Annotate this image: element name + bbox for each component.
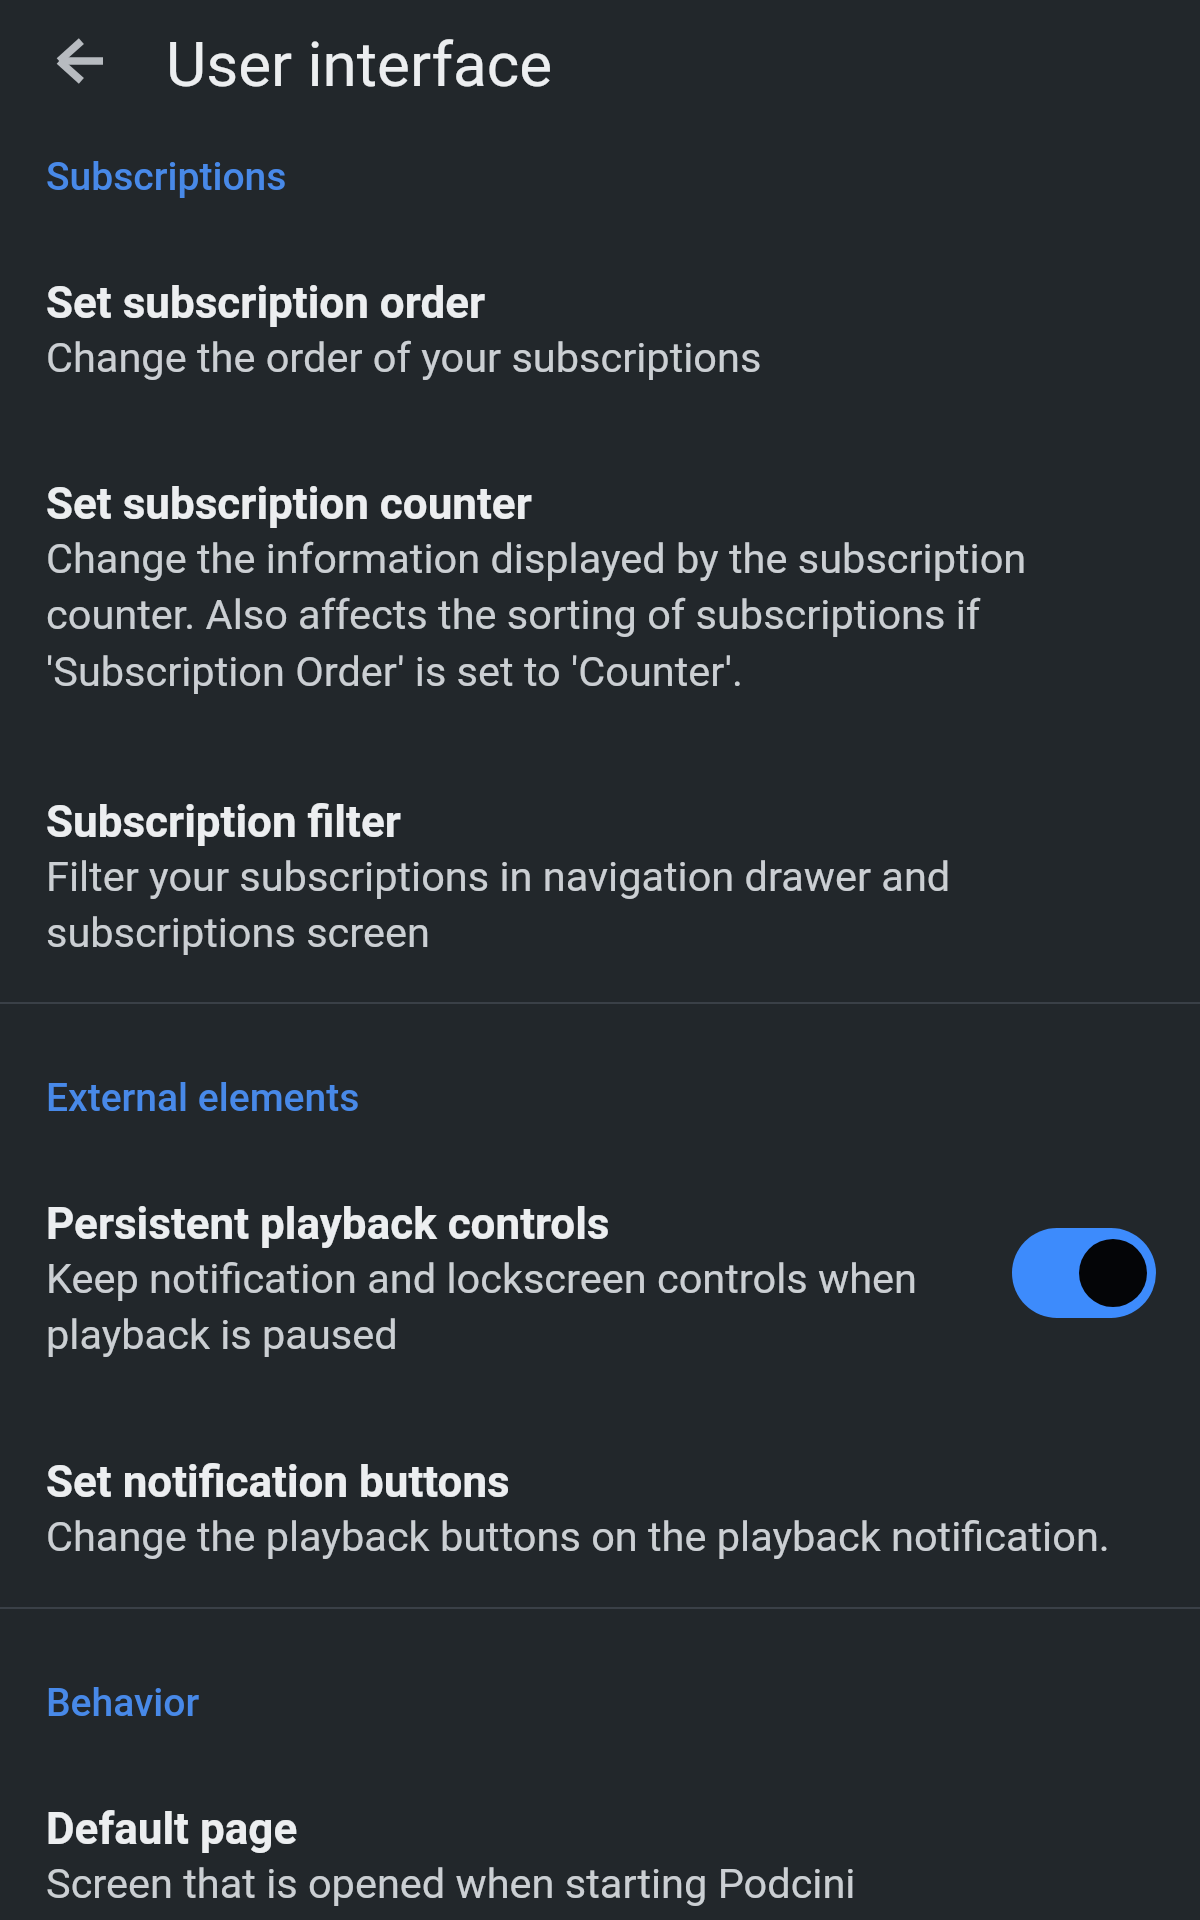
button[interactable]: Set subscription counter xyxy=(0,478,1200,768)
staticText: Default page xyxy=(46,1803,298,1855)
button[interactable]: Set subscription order xyxy=(0,277,1200,449)
button[interactable]: Set notification buttons xyxy=(0,1456,1200,1596)
staticText: Subscriptions xyxy=(46,154,287,200)
staticText: Set notification buttons xyxy=(46,1456,510,1508)
staticText: Persistent playback controls xyxy=(46,1198,610,1250)
staticText: Set subscription counter xyxy=(46,478,532,530)
staticText: Subscription filter xyxy=(46,796,401,848)
staticText: User interface xyxy=(166,28,553,101)
staticText: Filter your subscriptions in navigation … xyxy=(46,852,981,957)
button[interactable]: Default page xyxy=(0,1803,1200,1920)
button[interactable]: Persistent playback controls xyxy=(0,1198,1200,1394)
staticText: Set subscription order xyxy=(46,277,486,329)
staticText: Keep notification and lockscreen control… xyxy=(46,1254,946,1359)
staticText: Change the playback buttons on the playb… xyxy=(46,1512,1166,1561)
staticText: Behavior xyxy=(46,1680,200,1726)
button[interactable]: Back xyxy=(24,5,135,116)
staticText: External elements xyxy=(46,1075,360,1121)
staticText: Change the information displayed by the … xyxy=(46,534,1051,696)
button[interactable]: Toggle persistent playback controls xyxy=(1012,1228,1156,1318)
button[interactable]: Subscription filter xyxy=(0,796,1200,986)
staticText: Screen that is opened when starting Podc… xyxy=(46,1859,1166,1908)
staticText: Change the order of your subscriptions xyxy=(46,333,1166,382)
